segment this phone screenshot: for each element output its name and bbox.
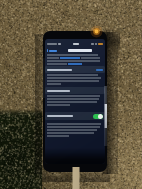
button[interactable]: Back bbox=[47, 49, 57, 52]
button[interactable]: Charging status bbox=[45, 87, 105, 94]
button[interactable]: Battery level 87 percent bbox=[45, 66, 105, 73]
button[interactable]: Optimised battery charging bbox=[45, 112, 105, 120]
